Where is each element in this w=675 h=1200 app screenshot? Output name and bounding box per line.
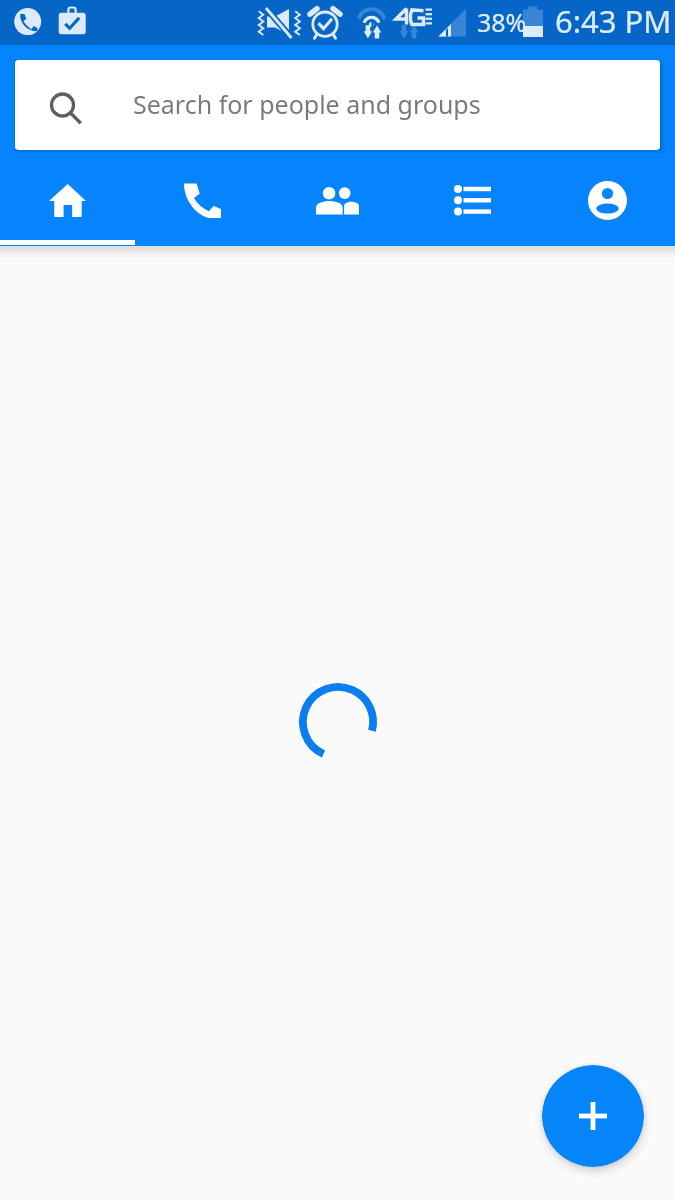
staticText: 6:43 PM <box>555 0 672 42</box>
button[interactable]: Lists <box>405 163 540 238</box>
staticText: 38% <box>477 5 527 39</box>
button[interactable]: Home <box>0 163 135 238</box>
button[interactable]: Contacts <box>270 163 405 238</box>
staticText: Search for people and groups <box>133 87 481 121</box>
button[interactable]: New conversation <box>542 1065 644 1167</box>
button[interactable]: Calls <box>135 163 270 238</box>
button[interactable]: Account <box>540 163 675 238</box>
button[interactable]: Search for people and groups <box>15 60 660 150</box>
